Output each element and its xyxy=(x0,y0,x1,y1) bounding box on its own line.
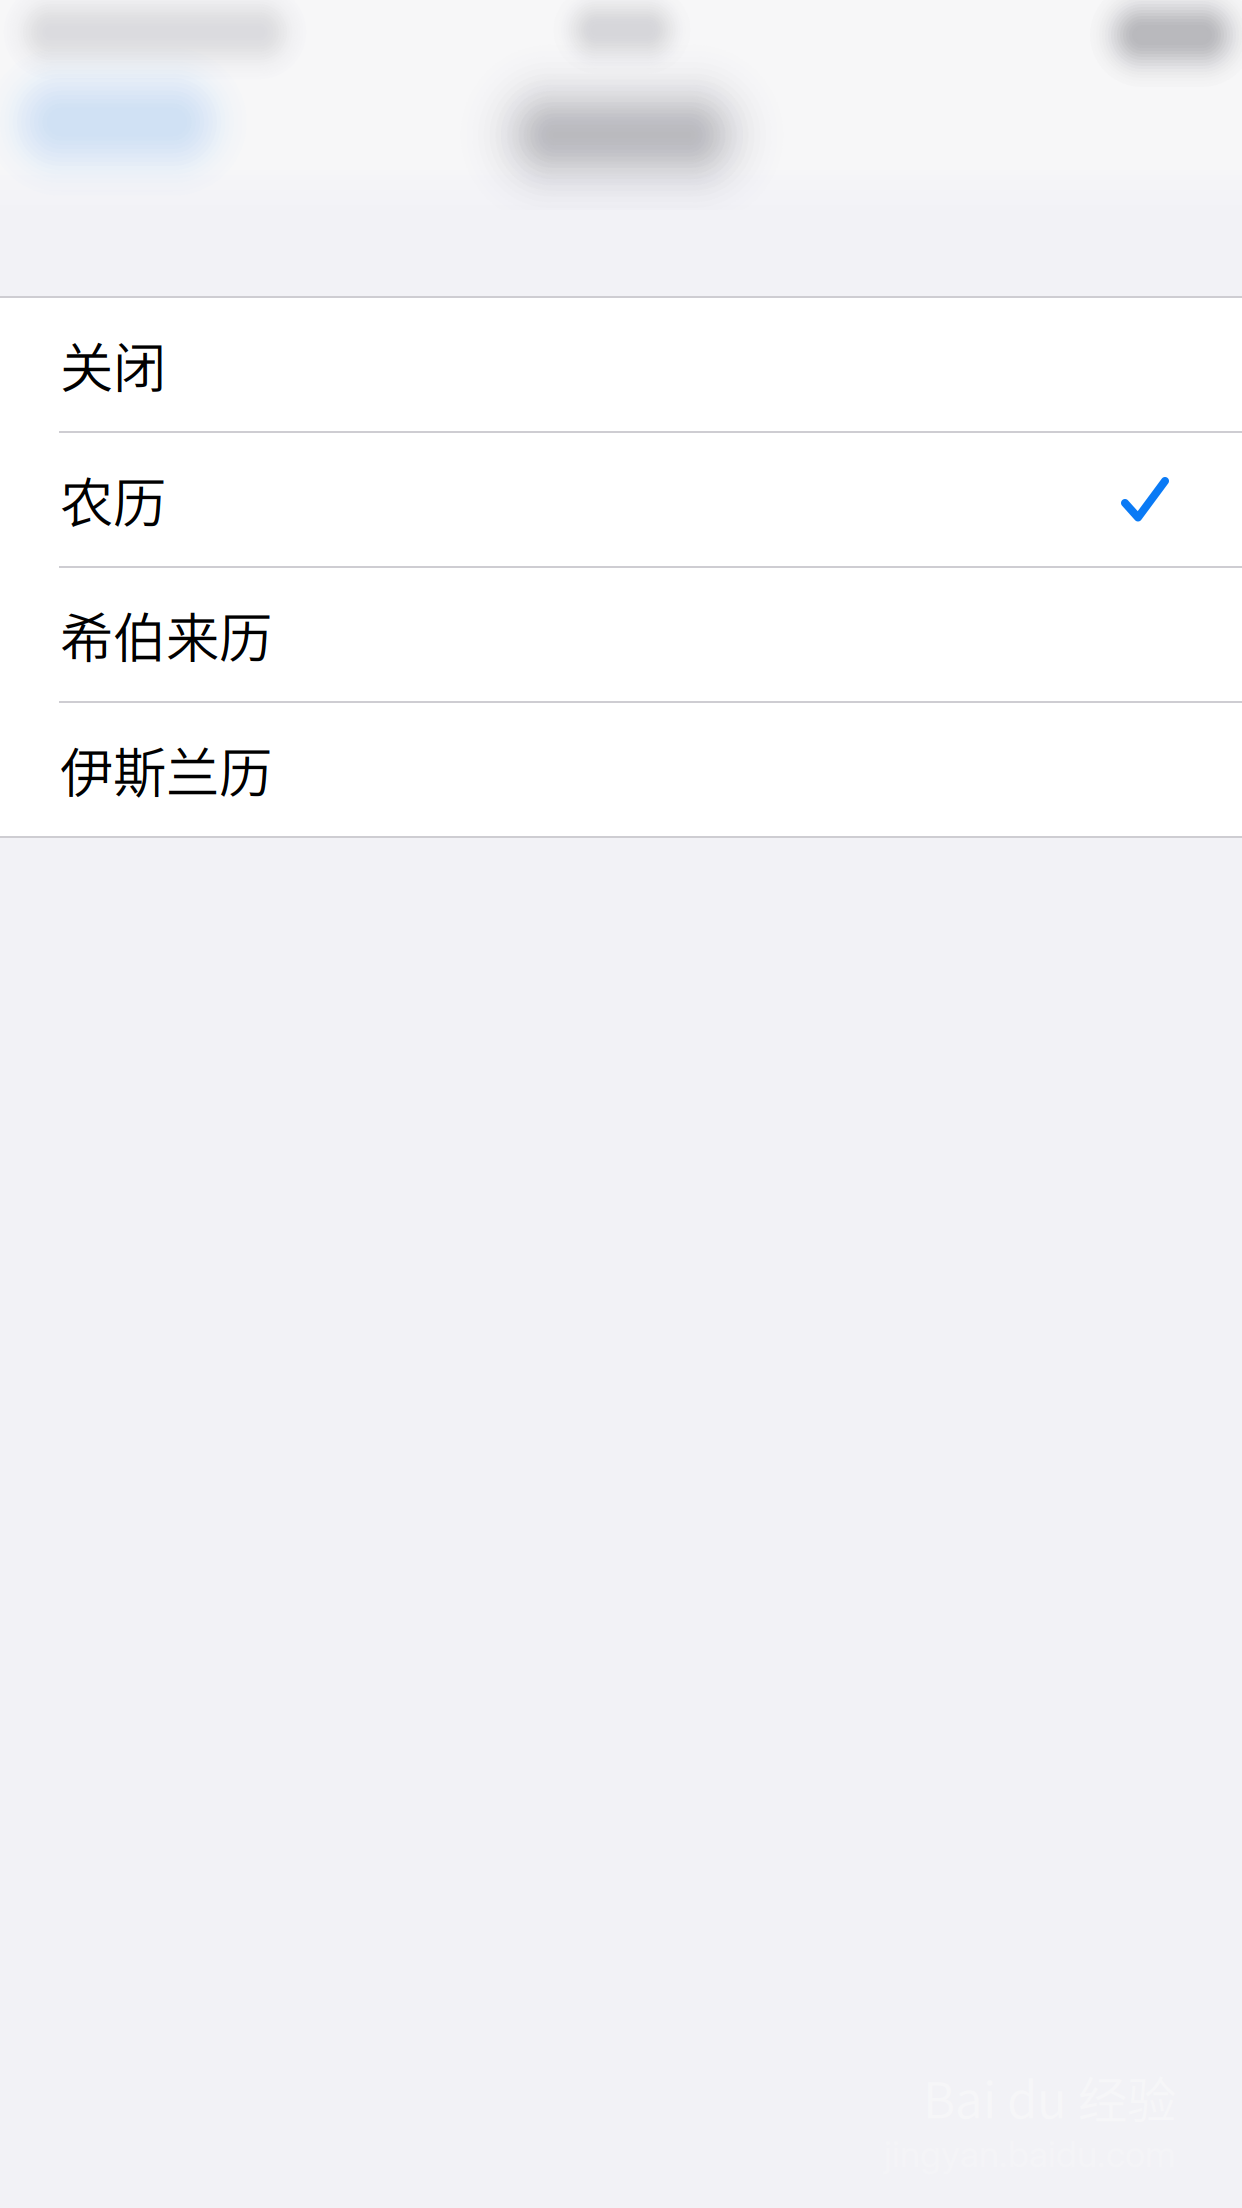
staticText: 希伯来历 xyxy=(60,596,272,673)
staticText: 关闭 xyxy=(60,326,166,403)
button[interactable]: 伊斯兰历 xyxy=(0,703,1242,836)
staticText: 农历 xyxy=(60,461,166,538)
button[interactable]: 关闭 xyxy=(0,298,1242,433)
button[interactable]: Back xyxy=(17,78,217,166)
staticText: 伊斯兰历 xyxy=(60,731,272,808)
button[interactable]: 农历 xyxy=(0,433,1242,568)
button[interactable]: 希伯来历 xyxy=(0,568,1242,703)
